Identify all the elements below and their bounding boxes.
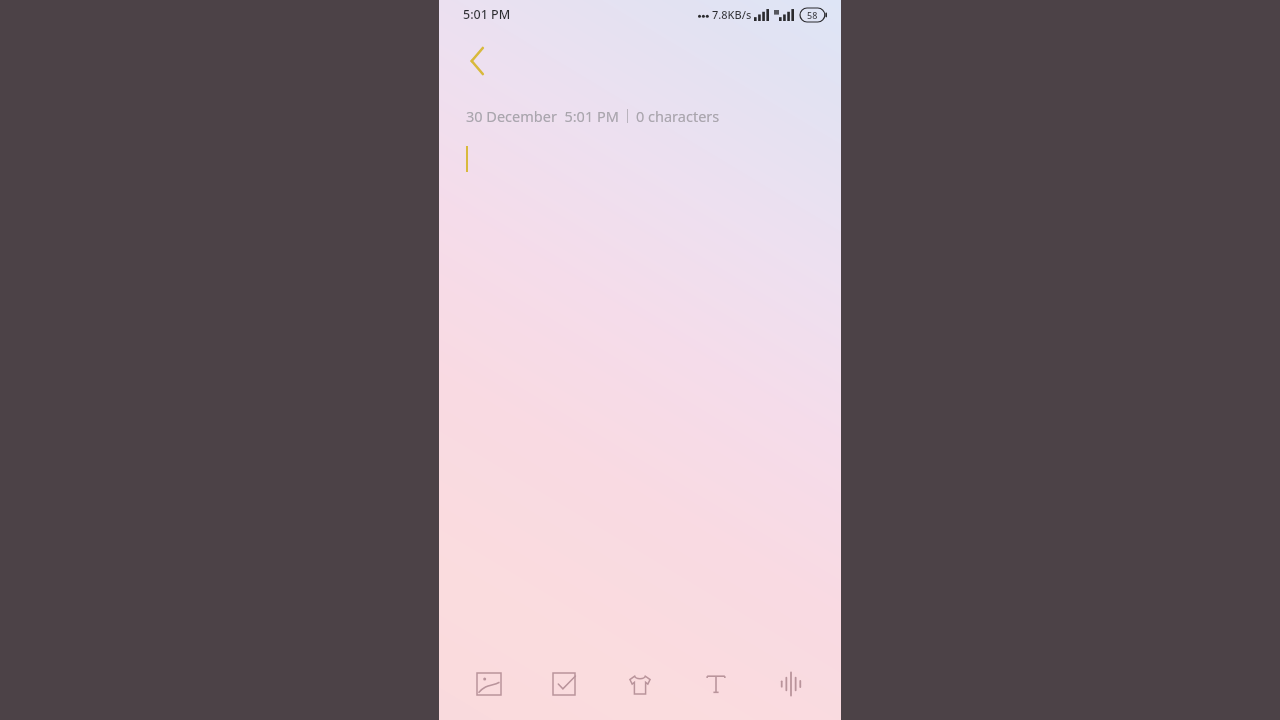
button[interactable]: Insert image bbox=[463, 658, 515, 710]
staticText: 0 characters bbox=[636, 106, 720, 126]
button[interactable]: Checklist bbox=[538, 658, 590, 710]
staticText: 58 bbox=[807, 9, 818, 21]
button[interactable]: Style bbox=[614, 658, 666, 710]
staticText: 30 December 5:01 PM bbox=[466, 106, 619, 126]
staticText: 5:01 PM bbox=[463, 6, 511, 23]
button[interactable]: Voice note bbox=[765, 658, 817, 710]
staticText: 7.8KB/s bbox=[712, 7, 752, 22]
button[interactable]: Back bbox=[449, 34, 503, 88]
button[interactable]: Text format bbox=[690, 658, 742, 710]
